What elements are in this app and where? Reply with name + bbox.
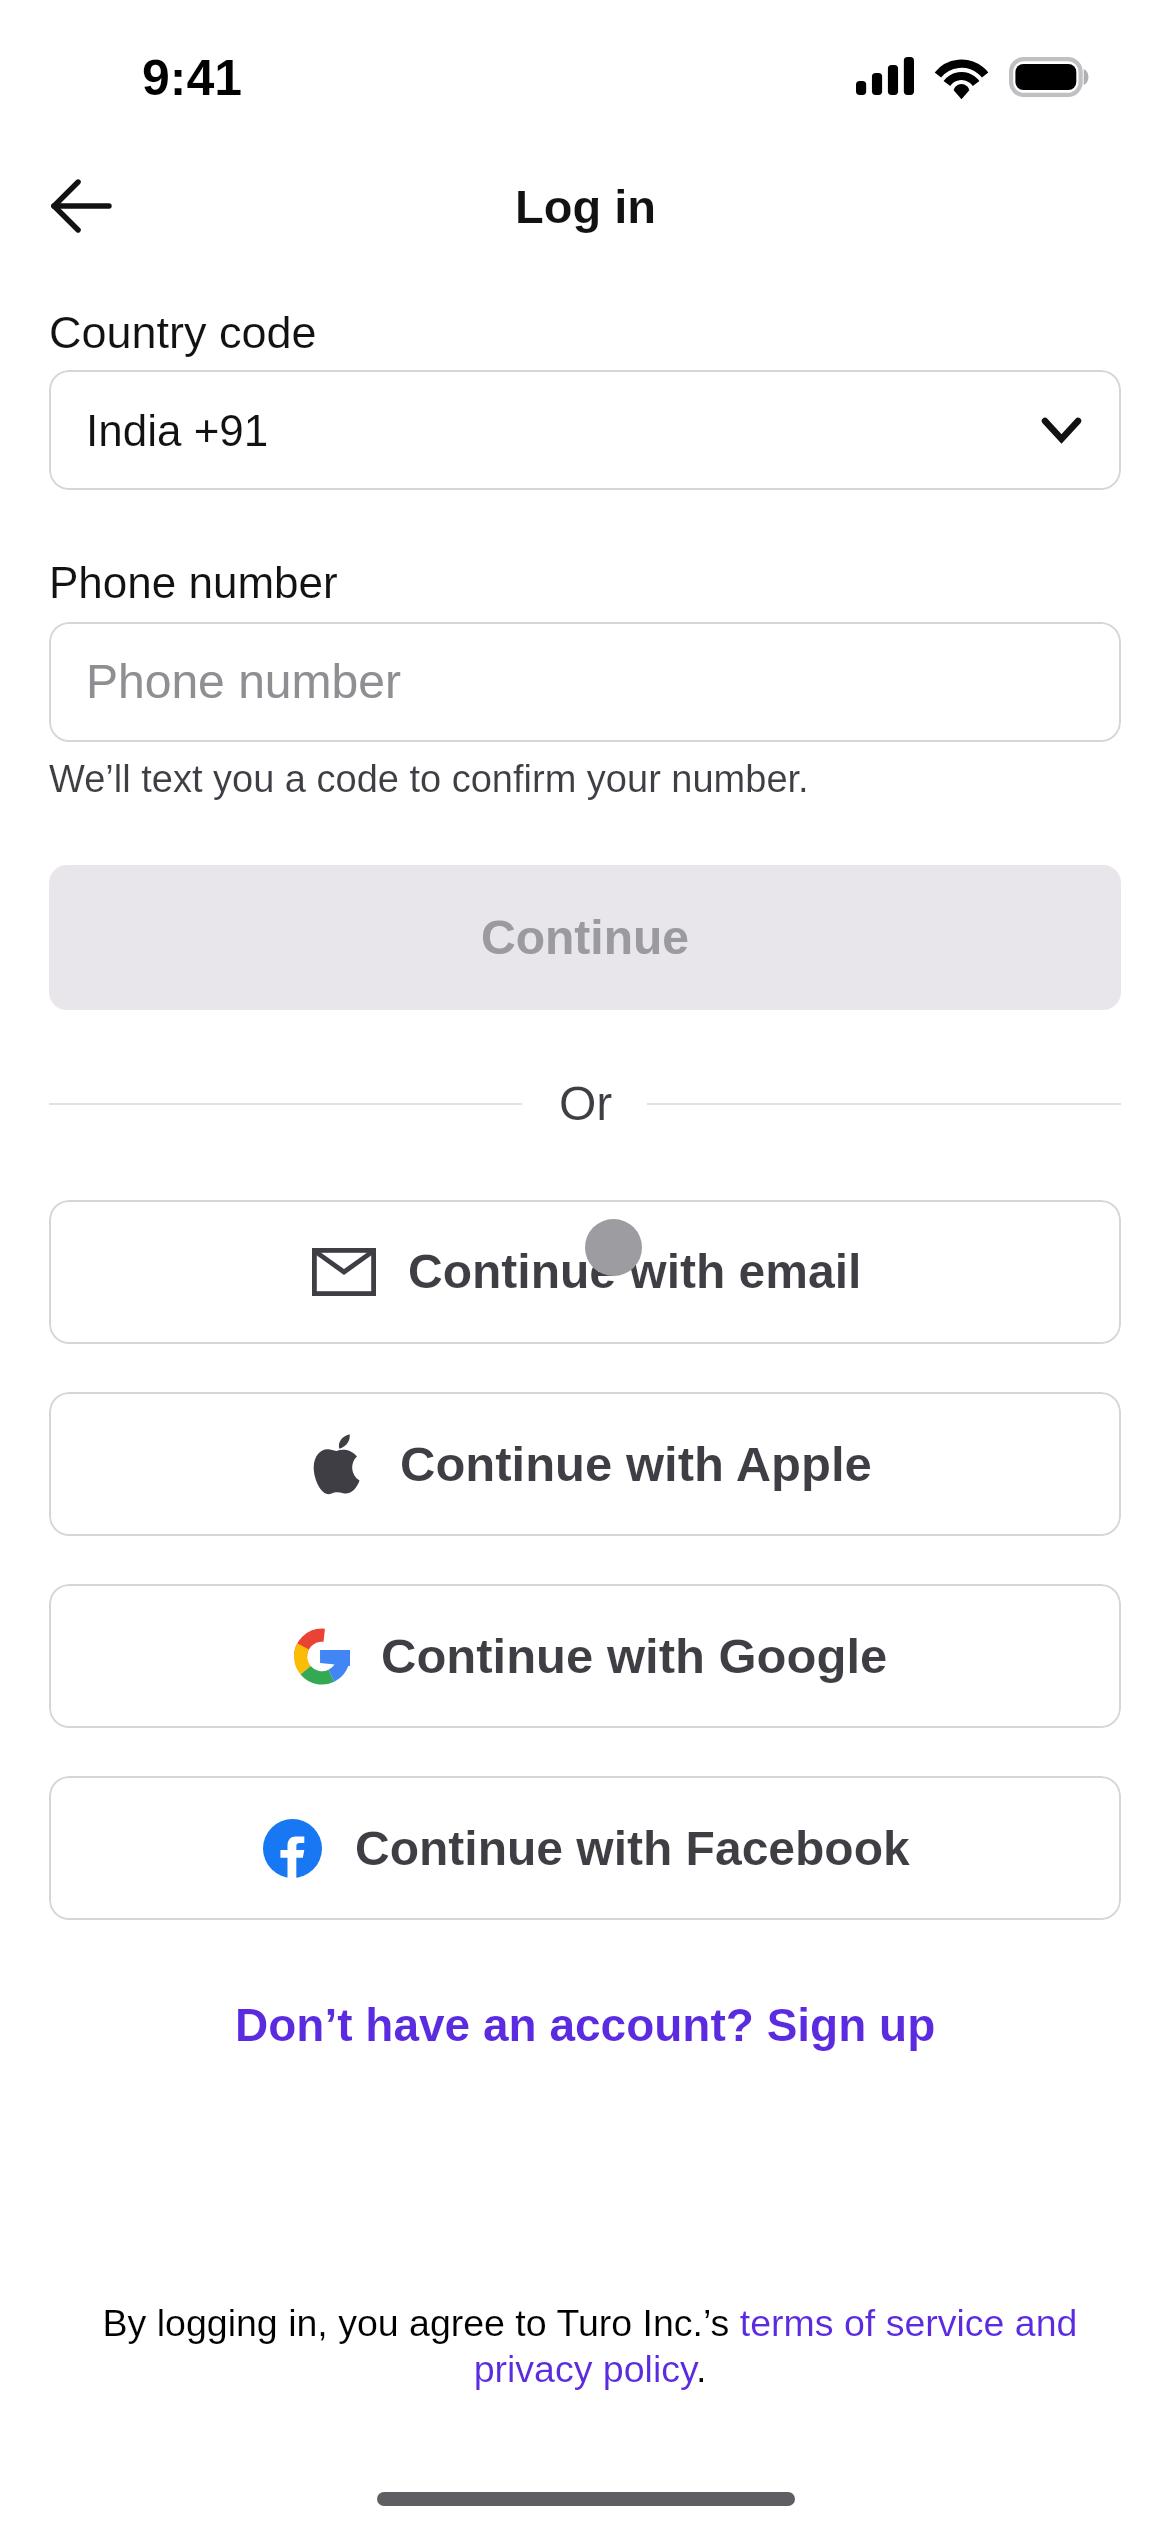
staticText: Continue with Facebook <box>355 1822 910 1876</box>
staticText: Don’t have an account? Sign up <box>235 1999 936 2050</box>
staticText: Phone number <box>49 558 338 607</box>
button[interactable]: India +91 <box>49 370 1121 490</box>
button[interactable]: Phone number <box>49 622 1121 742</box>
button[interactable]: Continue with Apple <box>49 1392 1121 1536</box>
button[interactable]: Continue with Google <box>49 1584 1121 1728</box>
staticText: Log in <box>515 180 656 233</box>
staticText: Country code <box>49 307 317 357</box>
staticText: 9:41 <box>142 50 243 106</box>
staticText: Or <box>559 1077 613 1131</box>
staticText: Continue with Apple <box>400 1437 872 1492</box>
button[interactable]: By logging in, you agree to Turo Inc.’s … <box>90 2302 1090 2390</box>
button[interactable]: Back <box>18 160 144 252</box>
staticText: India +91 <box>86 406 269 455</box>
staticText: We’ll text you a code to confirm your nu… <box>49 758 809 800</box>
staticText: Continue <box>481 911 689 965</box>
button[interactable]: Continue <box>49 865 1121 1010</box>
button[interactable]: Continue with Facebook <box>49 1776 1121 1920</box>
staticText: Phone number <box>86 655 401 709</box>
staticText: Continue with email <box>408 1245 862 1299</box>
staticText: By logging in, you agree to Turo Inc.’s … <box>90 2302 1090 2390</box>
button[interactable]: Continue with email <box>49 1200 1121 1344</box>
button[interactable]: Don’t have an account? Sign up <box>0 1981 1170 2067</box>
staticText: Continue with Google <box>381 1629 888 1684</box>
